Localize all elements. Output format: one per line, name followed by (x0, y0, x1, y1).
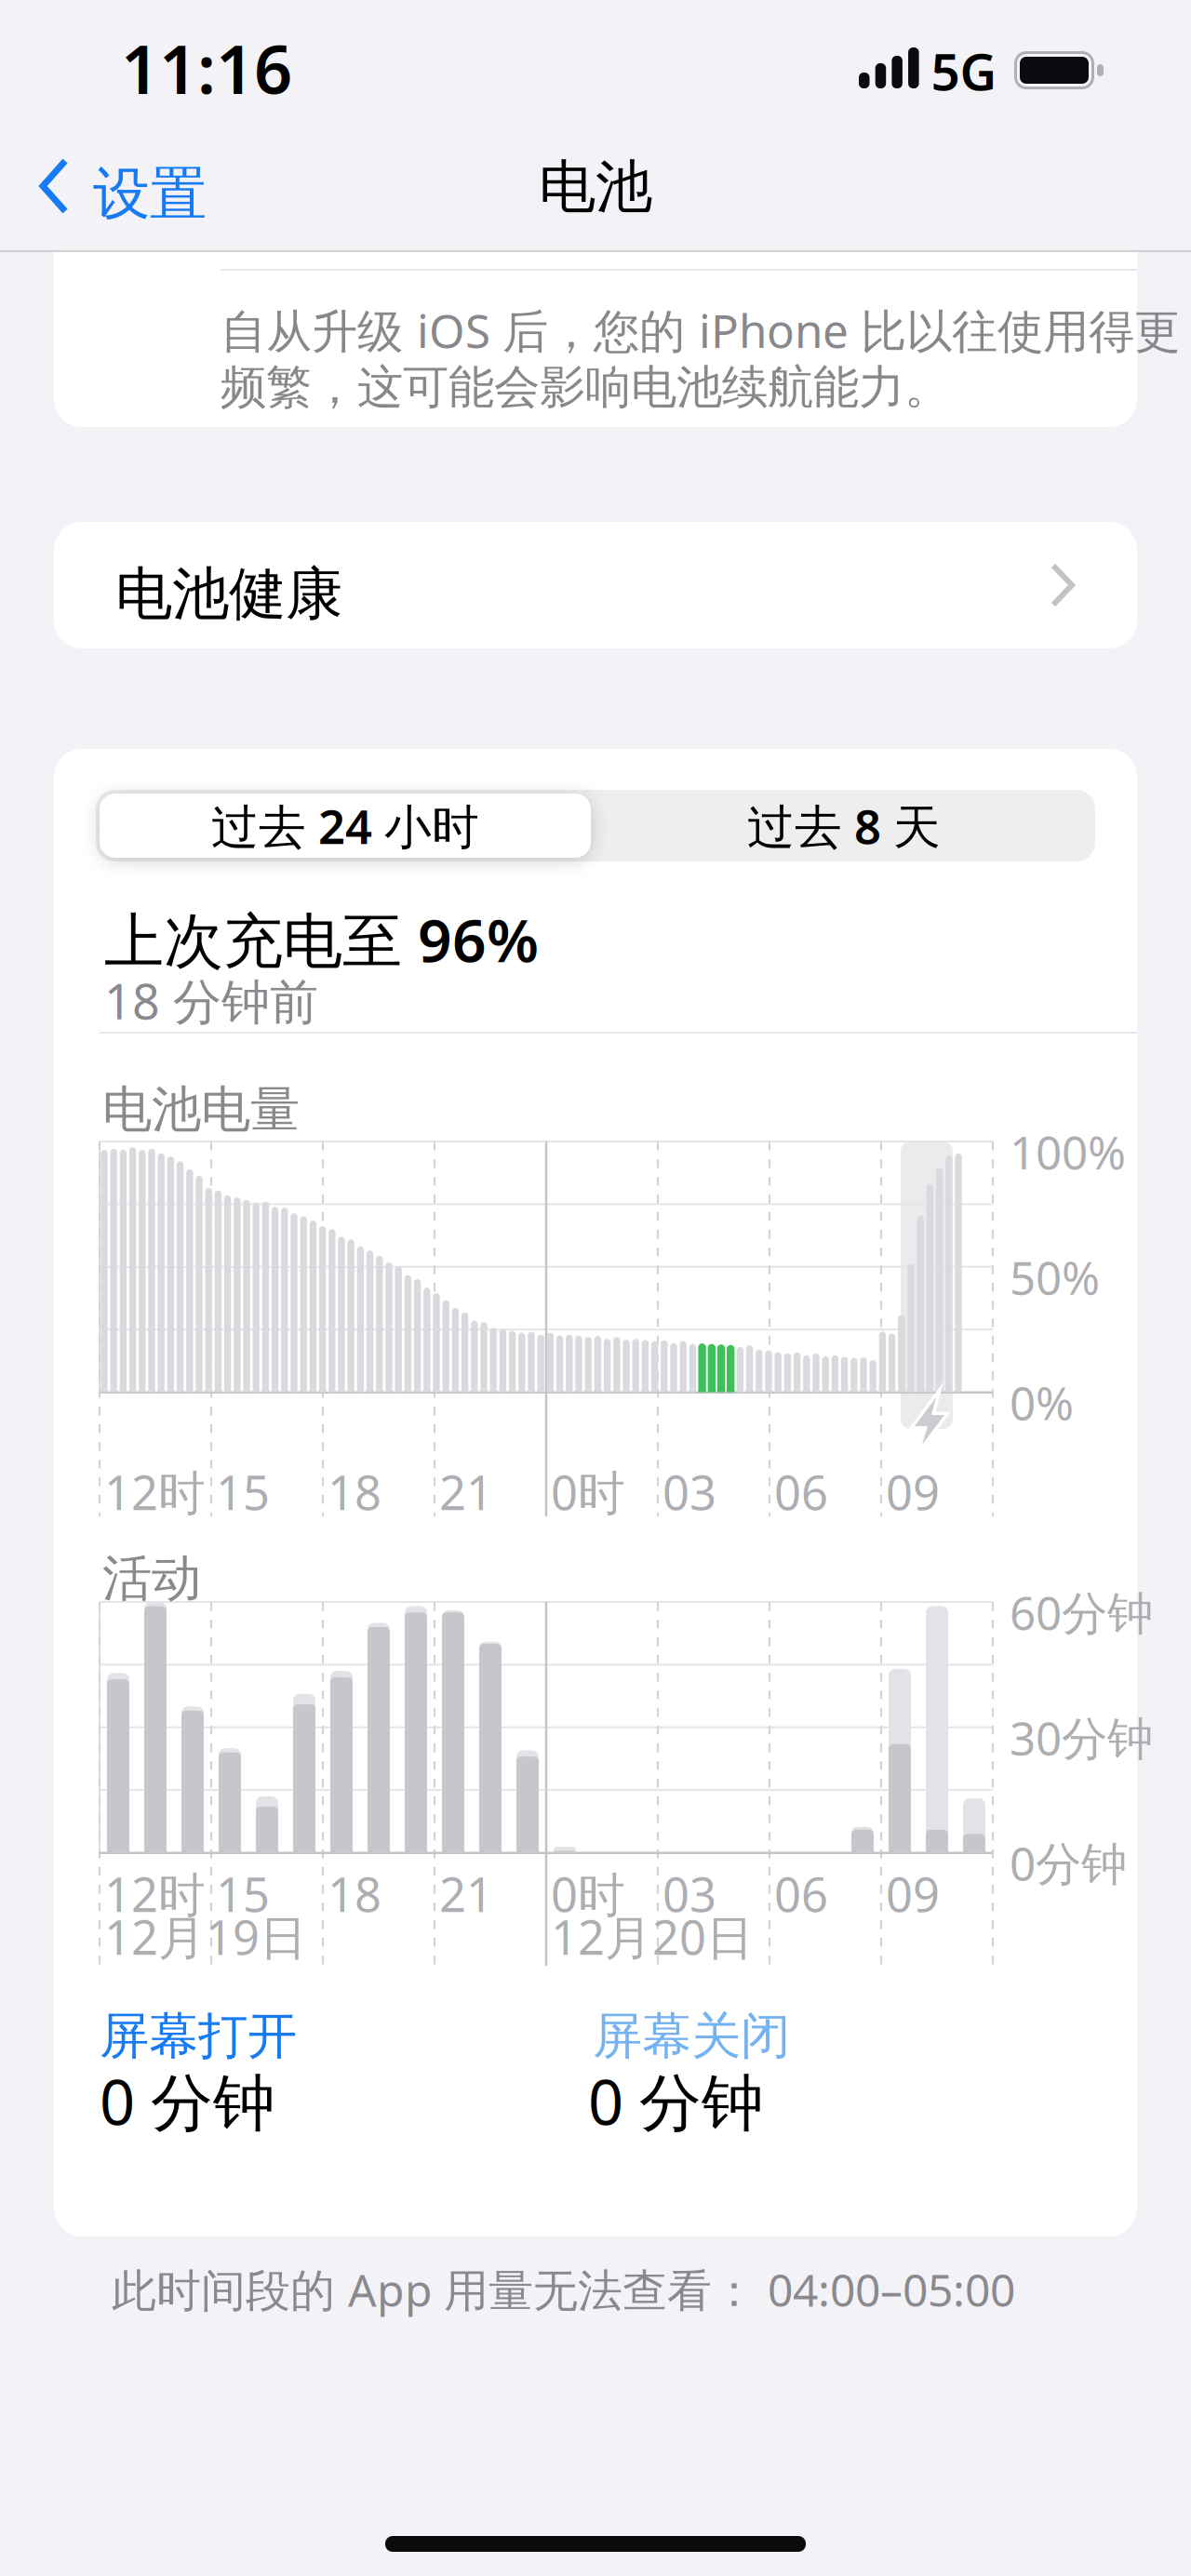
staticText: 0 分钟 (100, 2060, 275, 2142)
button[interactable]: 电池健康 (54, 522, 1137, 648)
staticText: 0% (1010, 1372, 1074, 1433)
staticText: 12月19日 (104, 1905, 307, 1968)
staticText: 18 (328, 1461, 381, 1523)
staticText: 18 分钟前 (104, 968, 318, 1033)
staticText: 18 (328, 1862, 381, 1925)
staticText: 电池 (539, 152, 652, 222)
staticText: 06 (774, 1862, 828, 1925)
staticText: 30分钟 (1010, 1707, 1153, 1768)
staticText: 09 (886, 1862, 940, 1925)
button[interactable]: 过去 8 天 (597, 794, 1091, 858)
staticText: 03 (662, 1862, 716, 1925)
staticText: 21 (439, 1461, 493, 1523)
staticText: 12月20日 (551, 1905, 754, 1968)
staticText: 频繁，这可能会影响电池续航能力。 (221, 359, 950, 415)
staticText: 电池电量 (102, 1079, 300, 1140)
staticText: 03 (662, 1461, 716, 1523)
staticText: 0时 (551, 1862, 625, 1925)
button[interactable]: 返回设置 (33, 149, 248, 223)
staticText: 12时 (104, 1862, 206, 1925)
staticText: 0时 (551, 1461, 625, 1523)
button[interactable]: 过去 24 小时 (100, 794, 591, 858)
staticText: 60分钟 (1010, 1582, 1153, 1642)
staticText: 09 (886, 1461, 940, 1523)
staticText: 12时 (104, 1461, 206, 1523)
staticText: 0分钟 (1010, 1832, 1127, 1893)
staticText: 自从升级 iOS 后，您的 iPhone 比以往使用得更 (221, 300, 1180, 360)
staticText: 过去 24 小时 (211, 794, 479, 857)
staticText: 5G (931, 37, 997, 104)
staticText: 11:16 (121, 23, 292, 112)
staticText: 上次充电至 96% (104, 900, 539, 979)
staticText: 06 (774, 1461, 828, 1523)
staticText: 100% (1010, 1121, 1126, 1182)
staticText: 屏幕打开 (100, 2006, 297, 2067)
staticText: 50% (1010, 1246, 1100, 1307)
staticText: 活动 (102, 1548, 201, 1609)
staticText: 屏幕关闭 (593, 2006, 790, 2067)
staticText: 21 (439, 1862, 493, 1925)
staticText: 过去 8 天 (747, 794, 941, 857)
staticText: 15 (216, 1461, 270, 1523)
staticText: 电池健康 (115, 559, 342, 629)
staticText: 15 (216, 1862, 270, 1925)
staticText: 此时间段的 App 用量无法查看： 04:00–05:00 (112, 2260, 1015, 2319)
staticText: 0 分钟 (588, 2060, 764, 2142)
staticText: 设置 (93, 159, 207, 229)
